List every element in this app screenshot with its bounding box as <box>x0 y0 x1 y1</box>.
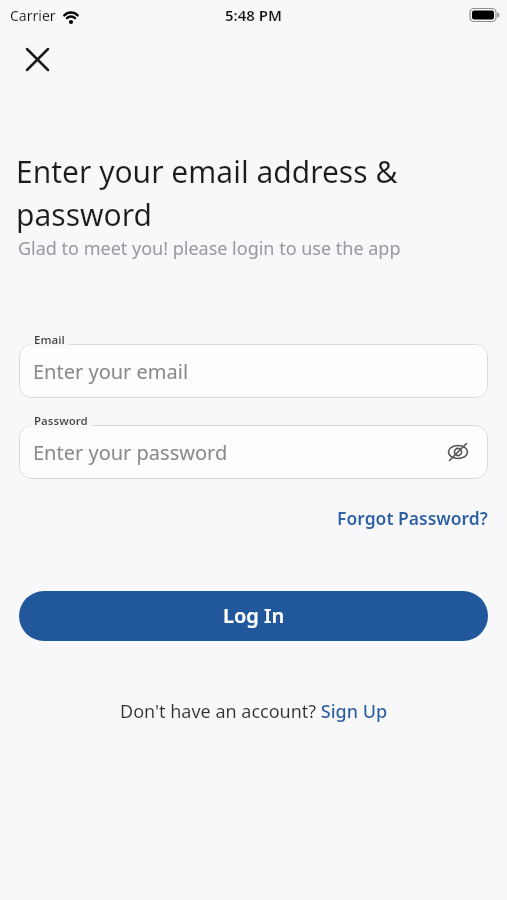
staticText: Enter your email <box>33 358 189 385</box>
staticText: Forgot Password? <box>337 506 488 530</box>
button[interactable]: Don't have an account? Sign Up <box>120 699 388 724</box>
button[interactable]: Log In <box>19 591 488 641</box>
staticText: Enter your email address & password <box>16 151 398 235</box>
button[interactable] <box>446 440 470 464</box>
staticText: Carrier <box>10 6 56 25</box>
staticText: Password <box>34 413 88 429</box>
staticText: Glad to meet you! please login to use th… <box>18 236 401 261</box>
staticText: Enter your password <box>33 439 228 466</box>
button[interactable]: Forgot Password? <box>337 506 488 530</box>
staticText: Don't have an account? Sign Up <box>120 699 388 724</box>
staticText: Email <box>34 332 65 348</box>
button[interactable] <box>22 44 52 74</box>
staticText: 5:48 PM <box>225 5 282 25</box>
button[interactable]: Enter your password <box>19 425 488 479</box>
staticText: Log In <box>223 602 285 629</box>
button[interactable]: Enter your email <box>19 344 488 398</box>
